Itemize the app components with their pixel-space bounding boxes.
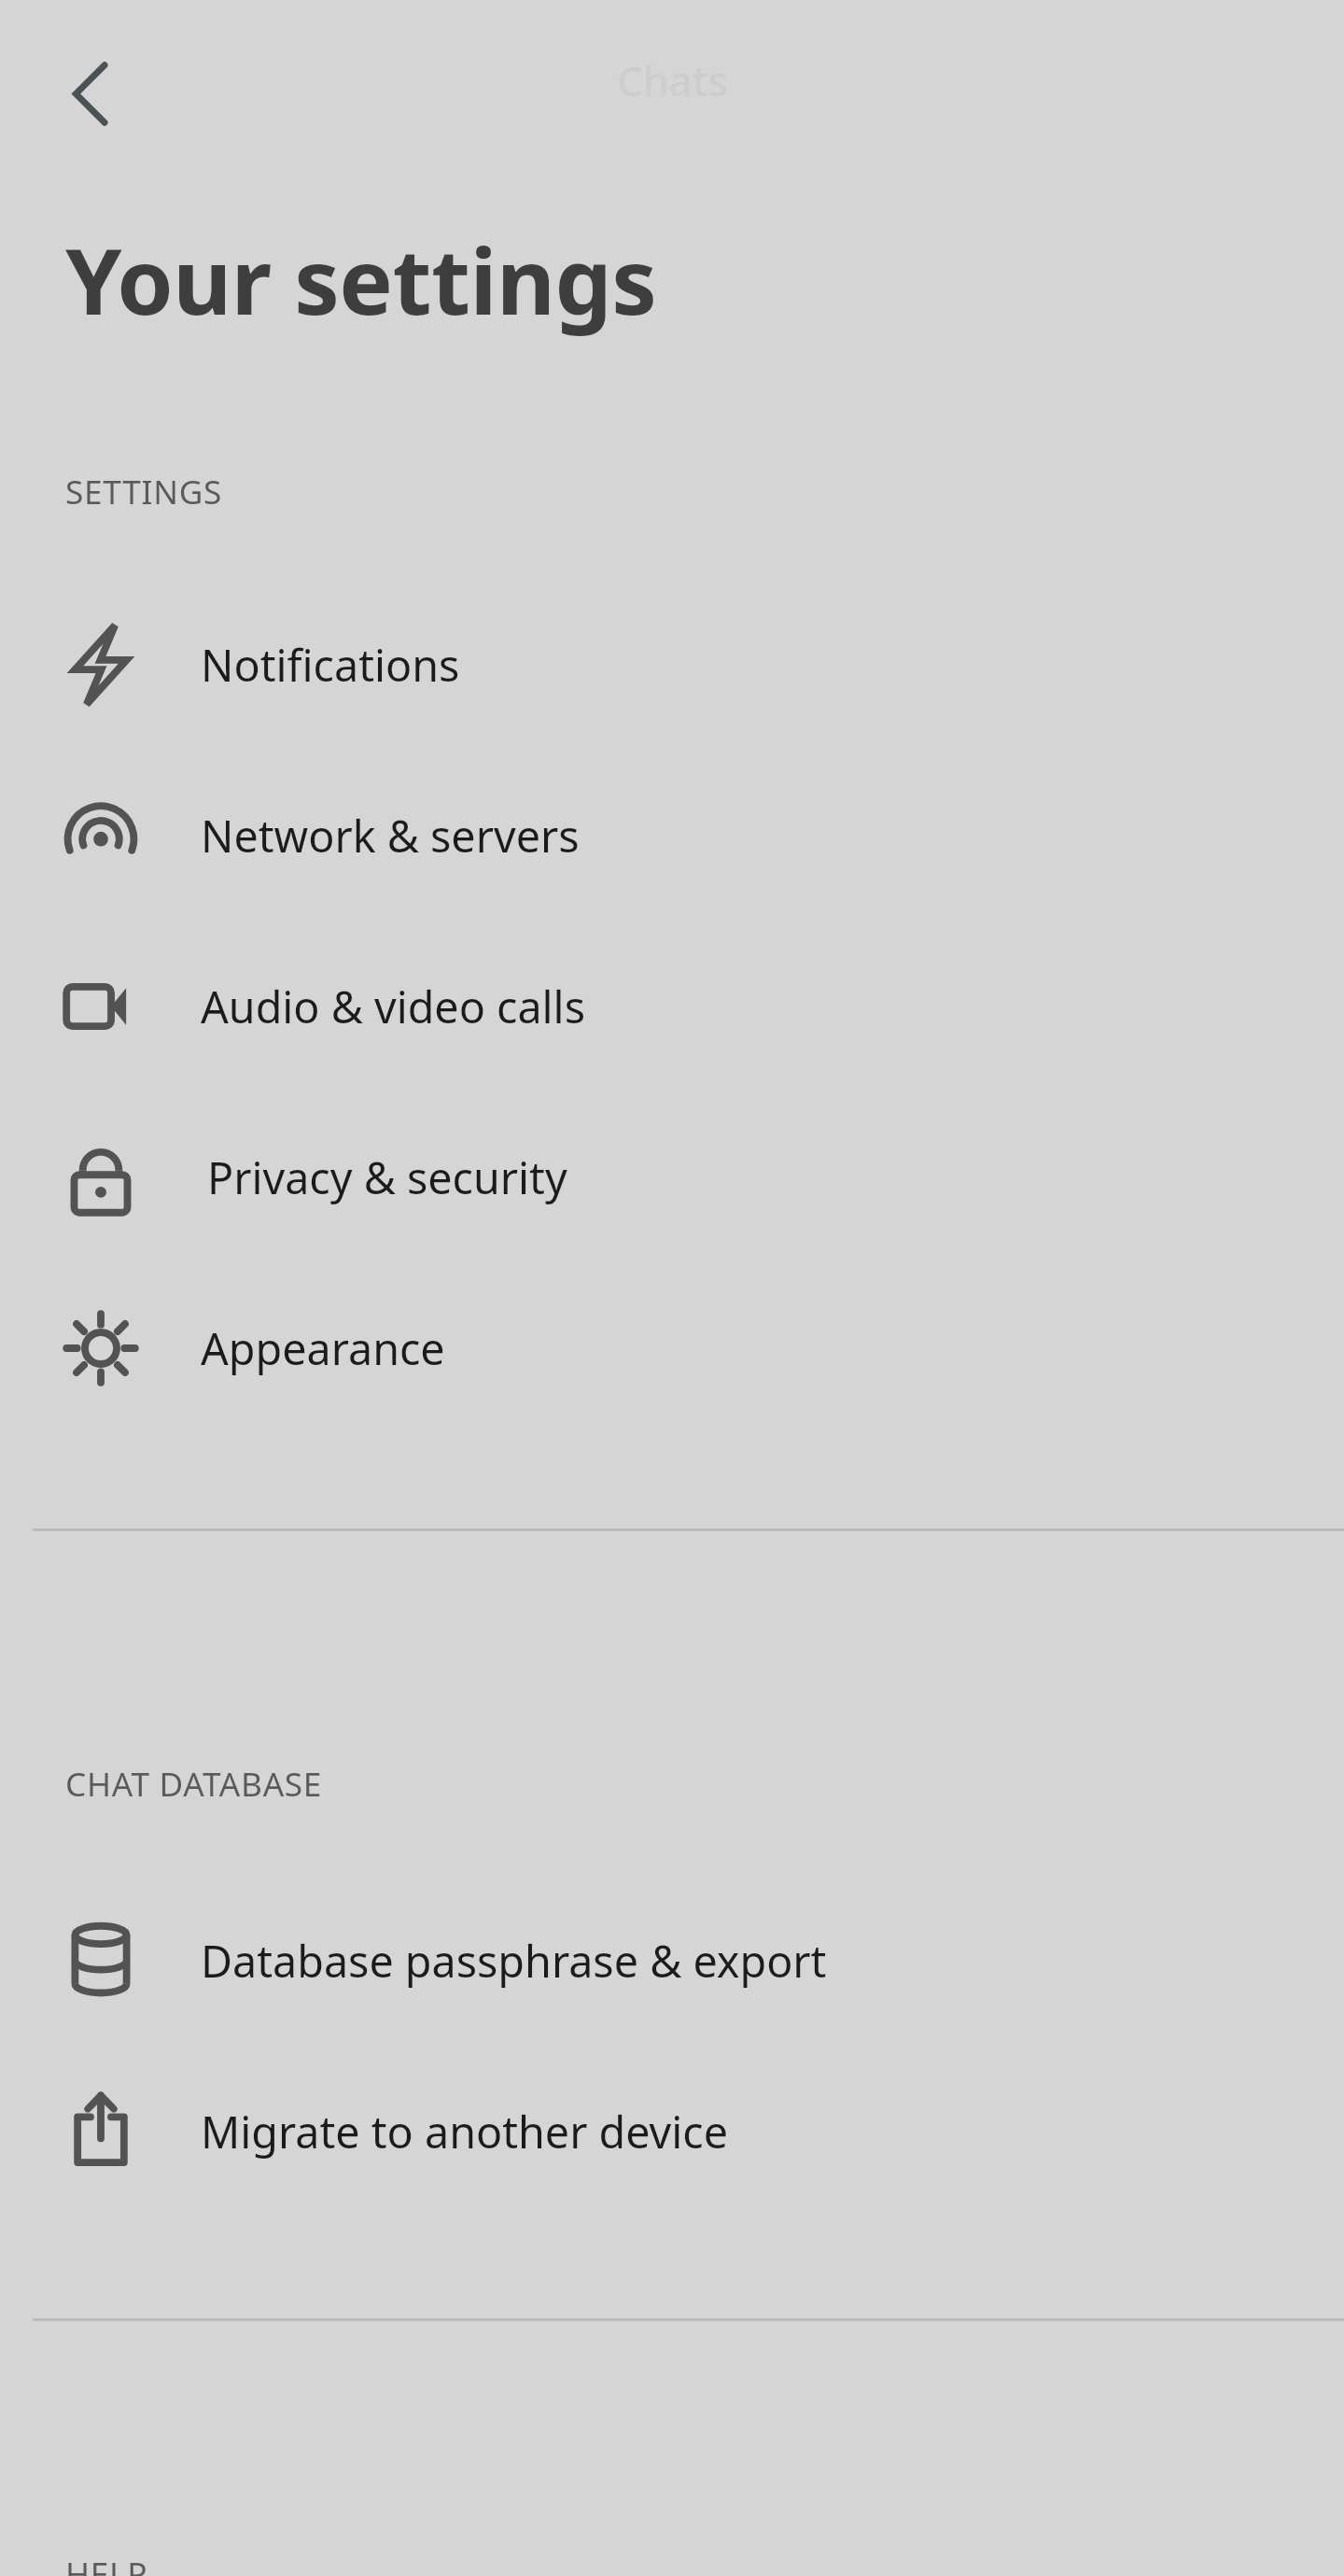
staticText: CHAT DATABASE <box>65 1761 323 1806</box>
button[interactable]: Database passphrase & export <box>0 1875 1344 2046</box>
button[interactable]: Notifications <box>0 579 1344 750</box>
button[interactable]: Network & servers <box>0 750 1344 921</box>
button[interactable]: Audio & video calls <box>0 921 1344 1091</box>
staticText: Notifications <box>201 635 460 695</box>
staticText: Database passphrase & export <box>201 1931 827 1991</box>
staticText: Migrate to another device <box>201 2102 729 2161</box>
staticText: SETTINGS <box>65 469 223 514</box>
staticText: Network & servers <box>201 806 580 866</box>
button[interactable]: Privacy & security <box>0 1091 1344 1262</box>
staticText: Your settings <box>65 218 657 341</box>
staticText: Audio & video calls <box>201 977 585 1036</box>
staticText: HELP <box>65 2551 148 2576</box>
button[interactable]: Back <box>30 33 151 154</box>
button[interactable]: Appearance <box>0 1262 1344 1433</box>
staticText: Privacy & security <box>207 1147 567 1207</box>
button[interactable]: Migrate to another device <box>0 2046 1344 2217</box>
staticText: Appearance <box>201 1318 445 1378</box>
